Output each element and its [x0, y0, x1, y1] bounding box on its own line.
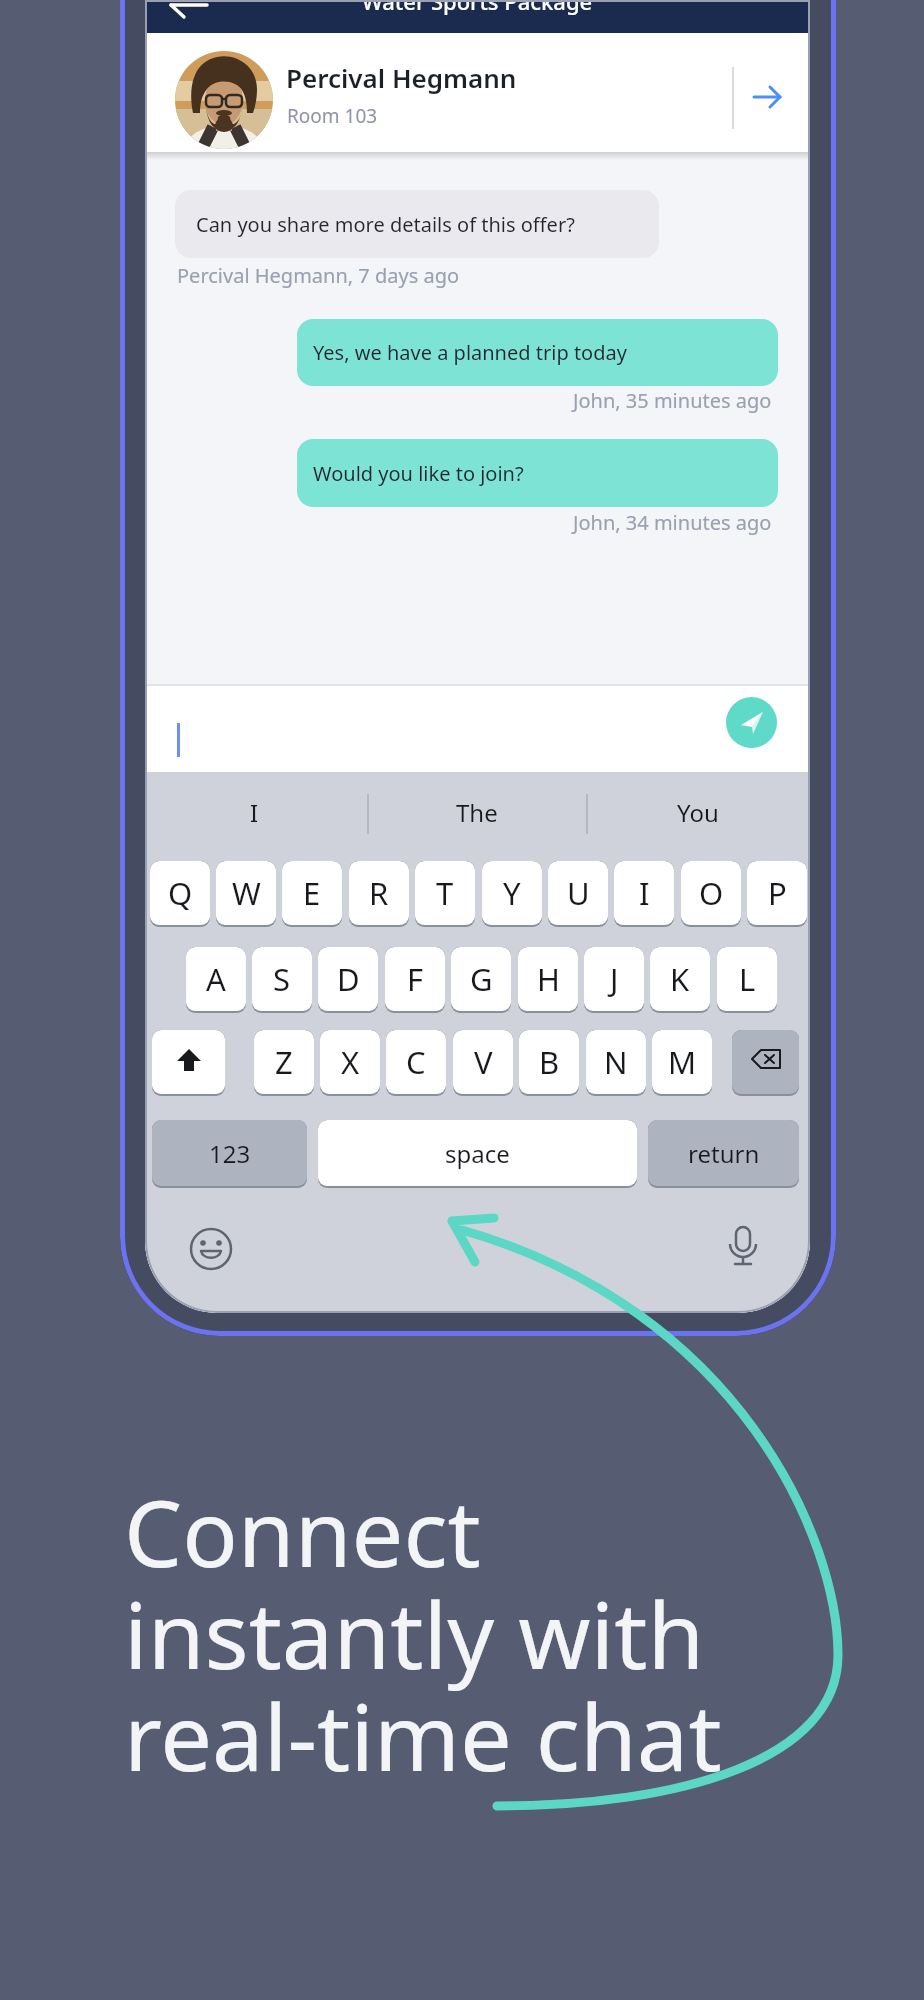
button[interactable]: space [318, 1120, 637, 1188]
button[interactable]: B [519, 1030, 579, 1096]
button[interactable]: S [252, 947, 312, 1013]
staticText: D [337, 958, 360, 1000]
button[interactable]: T [415, 861, 475, 927]
staticText: N [604, 1041, 628, 1083]
staticText: X [341, 1041, 360, 1083]
button[interactable]: H [518, 947, 578, 1013]
staticText: Room 103 [287, 103, 378, 129]
button[interactable]: I [614, 861, 674, 927]
staticText: John, 34 minutes ago [573, 509, 772, 536]
button[interactable]: K [650, 947, 710, 1013]
staticText: John, 35 minutes ago [573, 387, 772, 414]
button[interactable]: J [584, 947, 644, 1013]
staticText: V [474, 1041, 493, 1083]
button[interactable]: Q [150, 861, 210, 927]
staticText: J [610, 958, 619, 1000]
staticText: space [445, 1137, 510, 1170]
staticText: A [206, 958, 226, 1000]
button[interactable]: R [349, 861, 409, 927]
button[interactable]: C [386, 1030, 446, 1096]
button[interactable] [726, 697, 777, 748]
button[interactable]: Percival Hegmann [145, 33, 810, 152]
button[interactable]: L [717, 947, 777, 1013]
staticText: R [369, 872, 389, 914]
staticText: B [539, 1041, 560, 1083]
staticText: Percival Hegmann, 7 days ago [177, 262, 460, 289]
staticText: I [639, 872, 650, 914]
staticText: Yes, we have a planned trip today [313, 339, 627, 366]
staticText: Q [168, 872, 193, 914]
button[interactable]: A [186, 947, 246, 1013]
staticText: Can you share more details of this offer… [196, 211, 575, 238]
button[interactable]: W [216, 861, 276, 927]
staticText: Z [275, 1041, 293, 1083]
staticText: I [250, 796, 259, 829]
button[interactable]: O [681, 861, 741, 927]
staticText: You [677, 796, 719, 829]
staticText: real-time chat [124, 1673, 722, 1798]
staticText: Water Sports Package [362, 0, 593, 16]
button[interactable]: 123 [152, 1120, 307, 1188]
staticText: Connect [124, 1469, 481, 1594]
button[interactable]: D [318, 947, 378, 1013]
staticText: S [273, 958, 291, 1000]
staticText: C [406, 1041, 426, 1083]
button[interactable]: G [451, 947, 511, 1013]
staticText: L [739, 958, 756, 1000]
button[interactable]: F [385, 947, 445, 1013]
staticText: F [407, 958, 424, 1000]
staticText: H [537, 958, 560, 1000]
button[interactable] [152, 1030, 225, 1096]
button[interactable]: Z [254, 1030, 314, 1096]
staticText: E [303, 872, 321, 914]
staticText: P [768, 872, 787, 914]
staticText: Would you like to join? [313, 460, 524, 487]
staticText: The [456, 796, 498, 829]
button[interactable]: return [648, 1120, 799, 1188]
staticText: Percival Hegmann [286, 60, 517, 95]
staticText: K [670, 958, 690, 1000]
staticText: M [668, 1041, 697, 1083]
staticText: G [470, 958, 493, 1000]
staticText: Y [503, 872, 521, 914]
staticText: U [567, 872, 590, 914]
button[interactable]: E [282, 861, 342, 927]
button[interactable]: U [548, 861, 608, 927]
staticText: W [232, 872, 261, 914]
button[interactable]: M [652, 1030, 712, 1096]
button[interactable]: X [320, 1030, 380, 1096]
staticText: return [688, 1137, 760, 1170]
staticText: 123 [209, 1137, 251, 1170]
button[interactable]: Y [482, 861, 542, 927]
button[interactable]: N [586, 1030, 646, 1096]
staticText: O [699, 872, 724, 914]
staticText: T [436, 872, 454, 914]
button[interactable] [732, 1030, 799, 1096]
staticText: instantly with [124, 1571, 705, 1696]
button[interactable]: P [747, 861, 807, 927]
button[interactable]: V [453, 1030, 513, 1096]
